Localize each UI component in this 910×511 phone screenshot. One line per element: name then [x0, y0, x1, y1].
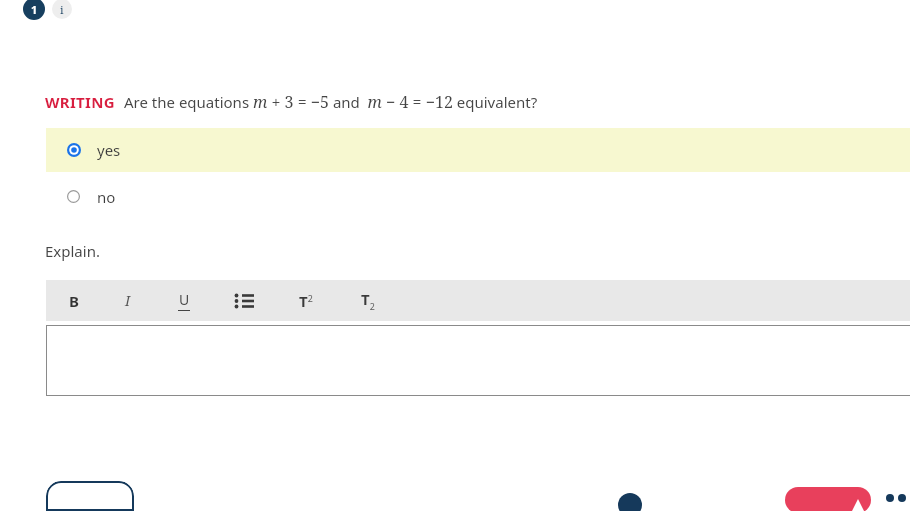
button[interactable]: Superscript	[275, 280, 337, 321]
staticText: i	[60, 2, 64, 17]
staticText: T2	[299, 291, 313, 311]
staticText: B	[69, 291, 79, 311]
staticText: U	[179, 290, 190, 309]
button[interactable]: Bulleted list	[213, 280, 275, 321]
button[interactable]: Information	[52, 0, 72, 19]
staticText: WRITING	[45, 92, 115, 112]
button[interactable]: Italic	[101, 280, 154, 321]
staticText: Are the equations m + 3 = −5 and m − 4 =…	[124, 91, 538, 113]
button[interactable]: Help	[618, 493, 642, 511]
staticText: yes	[97, 140, 121, 160]
button[interactable]: yes	[46, 128, 910, 172]
button[interactable]: Bold	[46, 280, 101, 321]
button[interactable]: Previous	[46, 481, 134, 511]
button[interactable]: no	[46, 175, 910, 218]
staticText: Explain.	[45, 241, 100, 261]
button[interactable]: Subscript	[337, 280, 399, 321]
staticText: T2	[361, 289, 375, 312]
staticText: 1	[31, 2, 38, 17]
staticText: I	[125, 291, 131, 310]
button[interactable]: Question 1	[23, 0, 45, 20]
staticText: no	[97, 187, 116, 207]
button[interactable]: Underline	[154, 280, 213, 321]
button[interactable]: Submit	[785, 487, 871, 511]
button[interactable]: More options	[886, 488, 910, 508]
button[interactable]: Answer text field	[46, 325, 910, 396]
